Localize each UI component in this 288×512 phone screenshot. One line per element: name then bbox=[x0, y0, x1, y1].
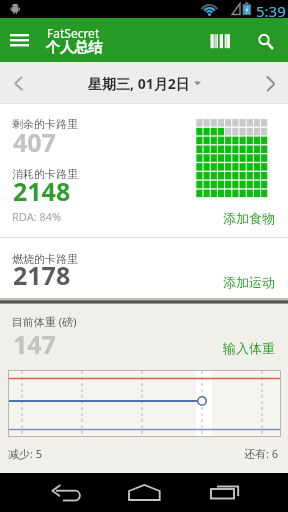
staticText: 添加食物 bbox=[223, 210, 275, 226]
button[interactable] bbox=[114, 473, 174, 512]
button[interactable]: 输入体重 bbox=[223, 340, 275, 356]
button[interactable] bbox=[195, 473, 255, 512]
staticText: 还有: 6 bbox=[244, 446, 279, 461]
staticText: 2178 bbox=[13, 258, 71, 292]
button[interactable]: 还有: 6 bbox=[244, 446, 279, 461]
button[interactable] bbox=[203, 28, 237, 54]
staticText: 2148 bbox=[13, 174, 71, 208]
button[interactable] bbox=[252, 62, 288, 104]
staticText: 消耗的卡路里 bbox=[12, 167, 78, 181]
staticText: 407 bbox=[13, 125, 56, 159]
staticText: FatSecret bbox=[47, 25, 100, 41]
staticText: 燃烧的卡路里 bbox=[12, 252, 78, 266]
staticText: 输入体重 bbox=[223, 340, 275, 356]
staticText: 147 bbox=[13, 327, 56, 361]
staticText: 星期三, 01月2日 bbox=[88, 74, 190, 93]
button[interactable]: 星期三, 01月2日 bbox=[0, 62, 288, 104]
button[interactable]: 添加食物 bbox=[223, 210, 275, 226]
staticText: 减少: 5 bbox=[8, 446, 43, 461]
staticText: 目前体重 (磅) bbox=[12, 314, 77, 329]
button[interactable] bbox=[0, 62, 36, 104]
button[interactable]: 添加运动 bbox=[223, 274, 275, 290]
button[interactable] bbox=[249, 28, 281, 54]
staticText: RDA: 84% bbox=[12, 209, 62, 224]
staticText: 5:39 bbox=[256, 1, 286, 21]
staticText: 添加运动 bbox=[223, 274, 275, 290]
button[interactable] bbox=[6, 28, 38, 54]
staticText: 个人总结 bbox=[46, 39, 102, 57]
staticText: 剩余的卡路里 bbox=[12, 117, 78, 131]
button[interactable] bbox=[35, 473, 95, 512]
